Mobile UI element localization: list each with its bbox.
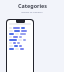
button[interactable]: [9, 33, 14, 35]
button[interactable]: [20, 33, 26, 35]
button[interactable]: [13, 27, 20, 29]
button[interactable]: [21, 30, 27, 32]
button[interactable]: [20, 48, 24, 50]
button[interactable]: [9, 48, 14, 50]
button[interactable]: [19, 45, 22, 47]
staticText: Categories: [18, 2, 47, 9]
button[interactable]: [21, 27, 25, 29]
button[interactable]: [13, 36, 18, 38]
button[interactable]: [9, 39, 17, 41]
button[interactable]: [13, 42, 16, 44]
button[interactable]: [14, 45, 18, 47]
button[interactable]: [17, 42, 20, 44]
button[interactable]: [19, 36, 22, 38]
staticText: Browse by category: [21, 11, 43, 14]
button[interactable]: [14, 30, 20, 32]
button[interactable]: [23, 39, 26, 41]
